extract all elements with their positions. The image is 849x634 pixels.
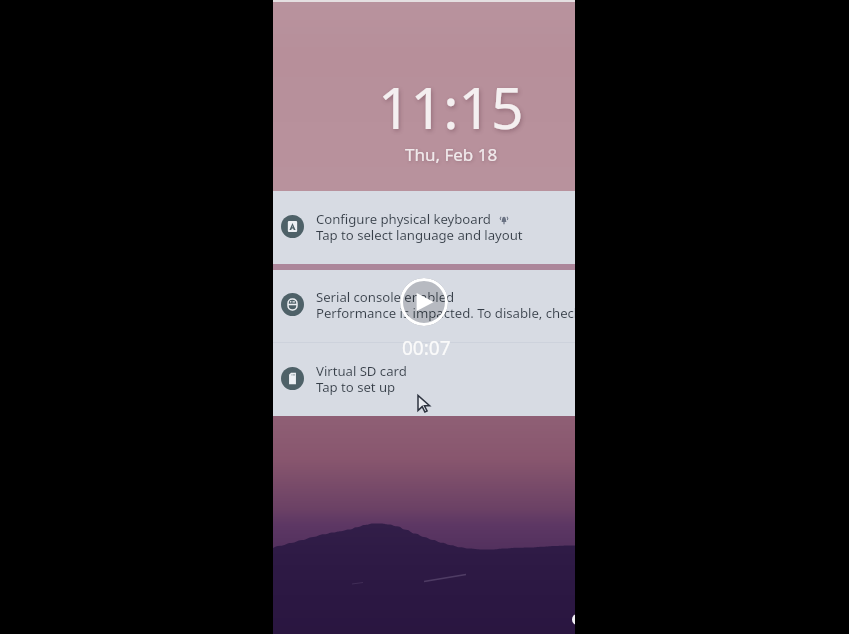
staticText: 11:15 xyxy=(378,68,524,146)
button[interactable]: Play xyxy=(400,278,448,326)
button[interactable]: Media control xyxy=(572,614,575,625)
staticText: Thu, Feb 18 xyxy=(405,143,498,166)
button[interactable]: Configure physical keyboard xyxy=(273,191,575,264)
staticText: Tap to select language and layout xyxy=(316,226,523,244)
staticText: Configure physical keyboard xyxy=(316,210,491,228)
staticText: Tap to set up xyxy=(316,378,396,396)
staticText: Performance is impacted. To disable, che… xyxy=(316,304,575,322)
staticText: Virtual SD card xyxy=(316,362,407,380)
other: Pointer xyxy=(417,395,433,411)
staticText: 00:07 xyxy=(402,335,451,361)
staticText: Serial console enabled xyxy=(316,288,455,306)
button[interactable]: Virtual SD card xyxy=(273,343,575,416)
button[interactable]: Serial console enabled xyxy=(273,270,575,343)
